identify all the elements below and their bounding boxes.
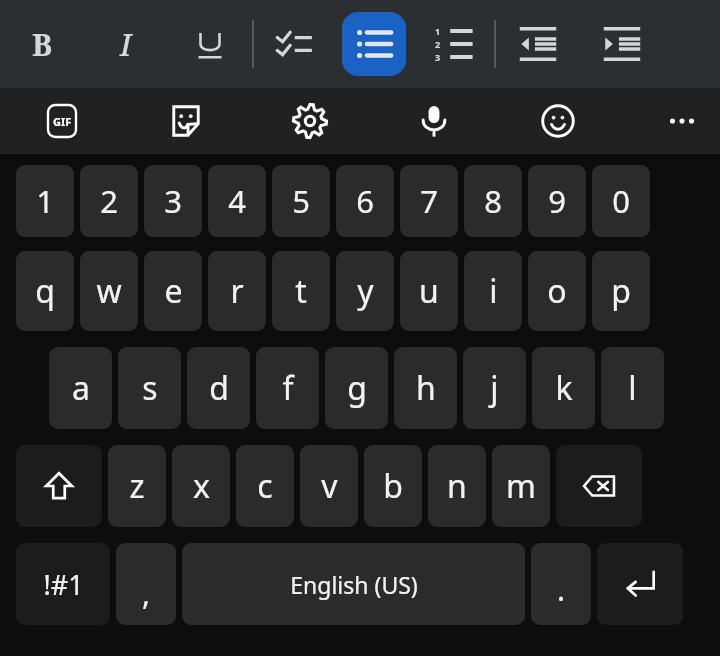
button[interactable]: e [144,251,202,331]
button[interactable]: 1 [16,165,74,237]
staticText: GIF [53,114,72,129]
staticText: r [230,269,244,313]
button[interactable]: i [464,251,522,331]
staticText: l [628,366,637,410]
staticText: . [557,569,566,610]
button[interactable]: !#1 [16,543,110,625]
staticText: 2 [100,180,118,222]
button[interactable]: English (US) [182,543,525,625]
button[interactable]: f [256,347,319,429]
staticText: !#1 [43,566,84,603]
staticText: s [142,366,158,410]
button[interactable]: d [187,347,250,429]
button[interactable]: t [272,251,330,331]
staticText: t [295,269,307,313]
button[interactable]: w [80,251,138,331]
staticText: p [611,269,631,313]
staticText: 3 [435,51,441,63]
button[interactable]: . [531,543,591,625]
button[interactable]: GIF [34,93,90,149]
button[interactable]: q [16,251,74,331]
button[interactable]: a [49,347,112,429]
button[interactable]: Backspace [556,445,642,527]
button[interactable]: b [364,445,422,527]
button[interactable]: , [116,543,176,625]
staticText: 4 [228,180,246,222]
staticText: h [416,366,436,410]
button[interactable]: 7 [400,165,458,237]
staticText: a [72,366,90,410]
button[interactable]: v [300,445,358,527]
button[interactable]: Settings [282,93,338,149]
staticText: i [489,269,498,313]
button[interactable]: 9 [528,165,586,237]
staticText: o [547,269,567,313]
button[interactable]: Italic [94,12,158,76]
button[interactable]: c [236,445,294,527]
staticText: w [96,269,122,313]
button[interactable]: h [394,347,457,429]
button[interactable]: Shift [16,445,102,527]
staticText: m [506,464,536,508]
staticText: 0 [612,180,630,222]
button[interactable]: n [428,445,486,527]
button[interactable]: z [108,445,166,527]
staticText: z [129,464,145,508]
button[interactable]: p [592,251,650,331]
button[interactable]: x [172,445,230,527]
staticText: u [419,269,439,313]
button[interactable]: Bulleted list [342,12,406,76]
button[interactable]: r [208,251,266,331]
button[interactable]: y [336,251,394,331]
staticText: x [193,464,210,508]
button[interactable]: 6 [336,165,394,237]
staticText: e [164,269,183,313]
button[interactable]: g [325,347,388,429]
staticText: n [447,464,467,508]
staticText: 1 [435,25,441,37]
button[interactable]: u [400,251,458,331]
staticText: q [35,269,55,313]
button[interactable]: Bold [10,12,74,76]
button[interactable]: 3 [144,165,202,237]
staticText: g [347,366,367,410]
button[interactable]: Emoji [530,93,586,149]
button[interactable]: Voice input [406,93,462,149]
staticText: c [257,464,273,508]
button[interactable]: Numbered list [422,12,486,76]
staticText: f [282,366,294,410]
button[interactable]: j [463,347,526,429]
staticText: y [357,269,374,313]
button[interactable]: More options [654,93,710,149]
staticText: b [383,464,403,508]
button[interactable]: 0 [592,165,650,237]
staticText: I [120,24,132,65]
staticText: j [490,366,499,410]
staticText: 3 [164,180,182,222]
button[interactable]: Enter [597,543,683,625]
staticText: , [142,573,151,614]
button[interactable]: l [601,347,664,429]
button[interactable]: Decrease indent [506,12,570,76]
button[interactable]: s [118,347,181,429]
staticText: English (US) [290,569,418,600]
button[interactable]: 2 [80,165,138,237]
staticText: 6 [356,180,374,222]
staticText: B [32,24,53,65]
staticText: 5 [292,180,310,222]
button[interactable]: 8 [464,165,522,237]
button[interactable]: m [492,445,550,527]
button[interactable]: o [528,251,586,331]
button[interactable]: Stickers [158,93,214,149]
staticText: 7 [420,180,438,222]
staticText: d [209,366,229,410]
button[interactable]: 5 [272,165,330,237]
button[interactable]: 4 [208,165,266,237]
button[interactable]: Underline [178,12,242,76]
button[interactable]: k [532,347,595,429]
staticText: 9 [548,180,566,222]
staticText: v [321,464,338,508]
staticText: k [555,366,573,410]
button[interactable]: Checklist [262,12,326,76]
button[interactable]: Increase indent [590,12,654,76]
